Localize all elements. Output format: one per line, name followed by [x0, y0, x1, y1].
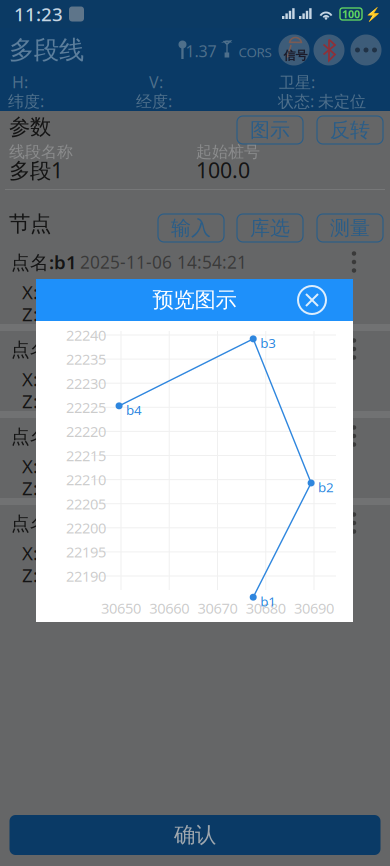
staticText: 30680	[246, 598, 286, 618]
staticText: 22235	[66, 349, 106, 369]
staticText: 22240	[66, 325, 106, 345]
staticText: 22190	[66, 566, 106, 586]
staticText: 多段线	[9, 34, 84, 65]
staticText: X:30677.001	[22, 280, 131, 304]
button[interactable]: More	[348, 32, 384, 68]
staticText: 30670	[197, 598, 237, 618]
staticText: b1	[260, 592, 276, 610]
staticText: 测量	[330, 216, 370, 240]
staticText: 点名:b3	[11, 424, 77, 448]
staticText: 预览图示	[152, 287, 236, 313]
staticText: 22195	[66, 542, 106, 562]
staticText: 30690	[294, 598, 334, 618]
staticText: 100.0	[196, 156, 250, 184]
button[interactable]: Bluetooth	[311, 32, 347, 68]
button[interactable]: 图示	[237, 116, 303, 144]
staticText: 100	[342, 7, 360, 21]
staticText: 参数	[9, 114, 51, 140]
button[interactable]: 点名:b4	[0, 505, 390, 585]
staticText: 输入	[171, 216, 211, 240]
staticText: b4	[126, 401, 142, 419]
staticText: b3	[260, 334, 276, 352]
staticText: 图示	[250, 118, 290, 142]
staticText: 点名:b2	[11, 337, 77, 361]
button[interactable]: 库选	[237, 214, 303, 242]
button[interactable]: 确认	[9, 815, 380, 855]
button[interactable]: Signal	[276, 32, 312, 68]
staticText: 信号	[283, 48, 307, 63]
staticText: 2025-11-06 14:54:21	[80, 250, 247, 273]
staticText: 状态: 未定位	[278, 90, 366, 112]
staticText: 22230	[66, 373, 106, 393]
staticText: 30660	[149, 598, 189, 618]
staticText: 经度:	[136, 90, 172, 112]
button[interactable]: 点名:b3	[0, 418, 390, 498]
button[interactable]: More options	[343, 247, 365, 277]
staticText: Z:12.280	[22, 476, 98, 500]
staticText: ⚡	[365, 6, 382, 22]
staticText: 2025-11-06 14:53:55	[80, 424, 247, 447]
button[interactable]: More options	[343, 334, 365, 364]
staticText: 节点	[9, 211, 51, 237]
staticText: H:	[12, 71, 28, 93]
staticText: 点名:b4	[11, 511, 77, 535]
staticText: 确认	[174, 822, 216, 848]
staticText: Z:12.411	[22, 389, 98, 413]
button[interactable]: More options	[343, 421, 365, 451]
staticText: b2	[318, 478, 334, 496]
staticText: 22225	[66, 398, 106, 417]
staticText: 22220	[66, 422, 106, 441]
staticText: V:	[149, 71, 163, 93]
button[interactable]: 输入	[158, 214, 224, 242]
staticText: 多段1	[9, 156, 63, 184]
staticText: Z:12.190	[22, 563, 98, 587]
staticText: 11:23	[14, 2, 63, 26]
staticText: X:30677.002	[22, 454, 131, 478]
staticText: 1.37	[185, 40, 216, 62]
staticText: 起始桩号	[196, 142, 260, 162]
staticText: 卫星:	[279, 71, 315, 93]
button[interactable]: More options	[343, 508, 365, 538]
staticText: 纬度:	[8, 90, 44, 112]
button[interactable]: 点名:b2	[0, 331, 390, 411]
staticText: 线段名称	[9, 142, 73, 162]
staticText: 22200	[66, 518, 106, 538]
staticText: 30650	[101, 598, 141, 618]
staticText: 2025-11-06 14:53:40	[80, 511, 247, 534]
button[interactable]: 反转	[317, 116, 383, 144]
staticText: 22210	[66, 470, 106, 489]
staticText: 反转	[330, 118, 370, 142]
staticText: 库选	[250, 216, 290, 240]
button[interactable]: 点名:b1	[0, 244, 390, 324]
staticText: 22215	[66, 446, 106, 465]
button[interactable]: 测量	[317, 214, 383, 242]
staticText: Z:12.345	[22, 302, 98, 326]
staticText: X:30690.612	[22, 367, 131, 391]
button[interactable]: Close	[292, 280, 332, 320]
staticText: 点名:b1	[11, 250, 77, 274]
staticText: 2025-11-06 14:54:10	[80, 337, 247, 360]
staticText: X:30650.004	[22, 541, 131, 565]
staticText: 22205	[66, 494, 106, 513]
staticText: CORS	[238, 43, 271, 61]
